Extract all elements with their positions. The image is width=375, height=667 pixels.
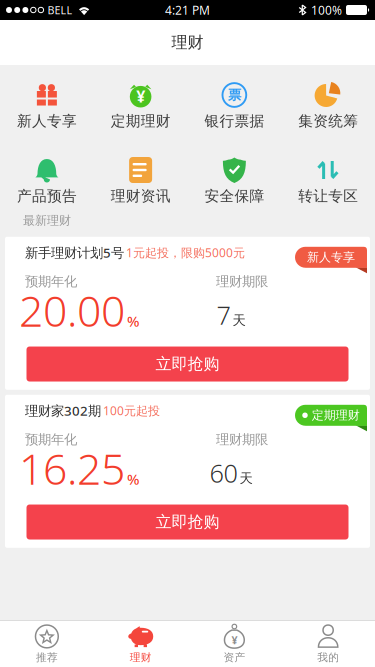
button[interactable]: 票 bbox=[187, 81, 281, 130]
button[interactable]: 理财 bbox=[94, 621, 188, 667]
staticText: 安全保障 bbox=[204, 187, 264, 205]
button[interactable]: 产品预告 bbox=[0, 156, 94, 205]
staticText: 理财期限 bbox=[216, 273, 268, 290]
staticText: 资产 bbox=[223, 651, 245, 664]
staticText: % bbox=[127, 469, 139, 489]
staticText: 产品预告 bbox=[17, 187, 77, 205]
staticText: 新人专享 bbox=[17, 112, 77, 130]
staticText: 理财期限 bbox=[216, 431, 268, 448]
button[interactable]: 理财家302期 bbox=[5, 395, 370, 548]
staticText: BELL bbox=[48, 3, 73, 17]
staticText: 预期年化 bbox=[25, 431, 77, 448]
staticText: ¥ bbox=[231, 633, 237, 647]
button[interactable]: 转让专区 bbox=[281, 156, 375, 205]
staticText: 新人专享 bbox=[307, 250, 355, 265]
staticText: 理财 bbox=[171, 33, 203, 52]
staticText: ¥ bbox=[136, 86, 145, 107]
staticText: 转让专区 bbox=[298, 187, 358, 205]
button[interactable]: 我的 bbox=[281, 621, 375, 667]
staticText: 银行票据 bbox=[204, 112, 264, 130]
staticText: 定期理财 bbox=[111, 112, 171, 130]
button[interactable]: 集资统筹 bbox=[281, 81, 375, 130]
staticText: 60 bbox=[209, 456, 237, 490]
staticText: 票 bbox=[228, 87, 241, 103]
staticText: 100元起投 bbox=[103, 403, 160, 419]
staticText: 立即抢购 bbox=[155, 354, 219, 374]
staticText: 理财资讯 bbox=[111, 187, 171, 205]
button[interactable]: ¥ bbox=[94, 81, 188, 130]
staticText: 7 bbox=[216, 298, 230, 332]
button[interactable]: 立即抢购 bbox=[26, 346, 348, 381]
button[interactable]: 安全保障 bbox=[187, 156, 281, 205]
button[interactable]: 推荐 bbox=[0, 621, 94, 667]
button[interactable]: ¥ bbox=[187, 621, 281, 667]
button[interactable]: 立即抢购 bbox=[26, 504, 348, 539]
staticText: 4:21 PM bbox=[165, 2, 210, 18]
staticText: 20.00 bbox=[19, 282, 125, 339]
staticText: 理财家302期 bbox=[25, 402, 101, 419]
staticText: 定期理财 bbox=[312, 408, 360, 423]
staticText: 1元起投，限购5000元 bbox=[126, 245, 245, 261]
staticText: 理财 bbox=[130, 651, 152, 664]
staticText: 立即抢购 bbox=[155, 512, 219, 532]
staticText: 新手理财计划5号 bbox=[25, 244, 124, 261]
button[interactable]: 新人专享 bbox=[0, 81, 94, 130]
staticText: 天 bbox=[239, 470, 252, 486]
staticText: 16.25 bbox=[19, 440, 125, 497]
button[interactable]: 理财资讯 bbox=[94, 156, 188, 205]
staticText: 预期年化 bbox=[25, 273, 77, 290]
staticText: 最新理财 bbox=[23, 213, 71, 228]
staticText: 我的 bbox=[317, 651, 339, 664]
button[interactable]: 新手理财计划5号 bbox=[5, 237, 370, 390]
staticText: 集资统筹 bbox=[298, 112, 358, 130]
staticText: % bbox=[127, 311, 139, 331]
staticText: 天 bbox=[232, 312, 245, 328]
staticText: 100% bbox=[311, 2, 342, 18]
staticText: 推荐 bbox=[36, 651, 58, 664]
